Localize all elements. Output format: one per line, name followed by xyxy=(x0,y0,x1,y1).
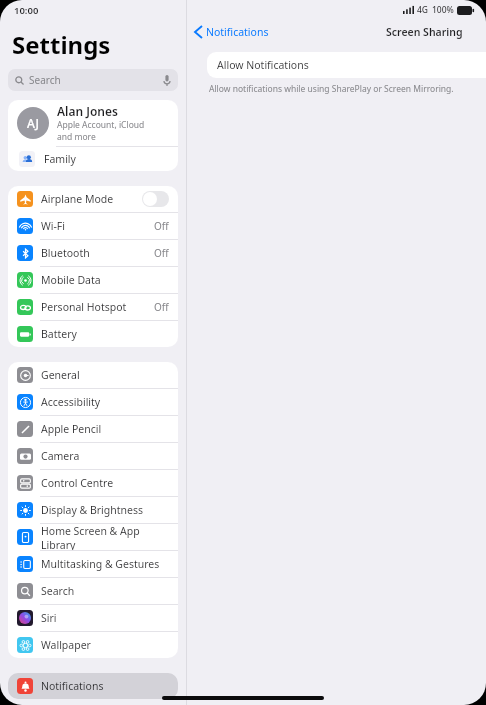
staticText: Personal Hotspot xyxy=(41,300,154,314)
button[interactable]: Home Screen & App Library xyxy=(8,524,178,550)
button[interactable]: Mobile Data xyxy=(8,267,178,293)
staticText: Off xyxy=(154,246,169,260)
staticText: Camera xyxy=(41,449,169,463)
staticText: AJ xyxy=(27,115,39,131)
button[interactable]: Battery xyxy=(8,321,178,347)
staticText: Control Centre xyxy=(41,476,169,490)
staticText: Notifications xyxy=(206,25,269,39)
button[interactable]: Search xyxy=(8,69,178,91)
staticText: Allow Notifications xyxy=(217,58,486,72)
button[interactable]: Notifications xyxy=(187,23,275,41)
staticText: Display & Brightness xyxy=(41,503,169,517)
button[interactable]: Camera xyxy=(8,443,178,469)
staticText: Apple Pencil xyxy=(41,422,169,436)
staticText: Off xyxy=(154,219,169,233)
button[interactable]: Toggle xyxy=(142,191,169,207)
staticText: Alan Jones xyxy=(57,103,118,119)
staticText: Family xyxy=(44,152,76,166)
button[interactable]: Siri xyxy=(8,605,178,631)
staticText: and more xyxy=(57,131,96,143)
staticText: Home Screen & App Library xyxy=(41,524,169,550)
staticText: Wallpaper xyxy=(41,638,169,652)
staticText: Notifications xyxy=(41,679,169,693)
button[interactable]: Wallpaper xyxy=(8,632,178,658)
button[interactable]: Airplane Mode xyxy=(8,186,178,212)
staticText: Screen Sharing xyxy=(386,25,463,39)
button[interactable]: Bluetooth xyxy=(8,240,178,266)
staticText: Airplane Mode xyxy=(41,192,142,206)
staticText: Bluetooth xyxy=(41,246,154,260)
button[interactable]: Personal Hotspot xyxy=(8,294,178,320)
staticText: 100% xyxy=(432,4,454,16)
staticText: Wi-Fi xyxy=(41,219,154,233)
button[interactable]: Accessibility xyxy=(8,389,178,415)
staticText: Off xyxy=(154,300,169,314)
staticText: Accessibility xyxy=(41,395,169,409)
staticText: Siri xyxy=(41,611,169,625)
staticText: Mobile Data xyxy=(41,273,169,287)
button[interactable]: Wi-Fi xyxy=(8,213,178,239)
button[interactable]: Allow Notifications xyxy=(207,52,486,78)
button[interactable]: AJ xyxy=(8,100,178,146)
button[interactable]: Search xyxy=(8,578,178,604)
staticText: Settings xyxy=(12,28,111,61)
button[interactable]: Control Centre xyxy=(8,470,178,496)
button[interactable]: Multitasking & Gestures xyxy=(8,551,178,577)
button[interactable]: Apple Pencil xyxy=(8,416,178,442)
staticText: Battery xyxy=(41,327,169,341)
staticText: General xyxy=(41,368,169,382)
staticText: Allow notifications while using SharePla… xyxy=(209,83,454,95)
staticText: Search xyxy=(41,584,169,598)
staticText: Search xyxy=(29,73,163,87)
staticText: Apple Account, iCloud xyxy=(57,119,145,131)
button[interactable]: Notifications xyxy=(8,673,178,699)
button[interactable]: Family xyxy=(8,147,178,171)
staticText: 10:00 xyxy=(14,4,39,17)
button[interactable]: General xyxy=(8,362,178,388)
button[interactable]: Display & Brightness xyxy=(8,497,178,523)
staticText: 4G xyxy=(417,4,429,16)
staticText: Multitasking & Gestures xyxy=(41,557,169,571)
